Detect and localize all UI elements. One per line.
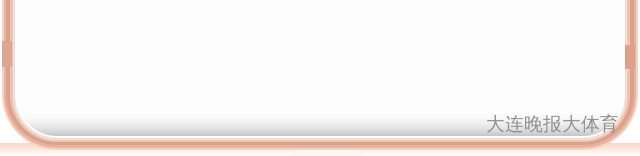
staticText: 大连晚报大体育 xyxy=(486,112,619,135)
